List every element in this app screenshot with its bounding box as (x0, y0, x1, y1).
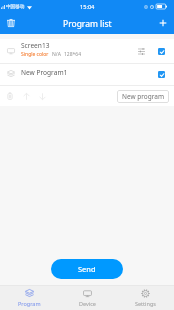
button[interactable]: Select program (158, 71, 165, 78)
staticText: 128*64 (64, 51, 82, 58)
button[interactable]: Program (0, 286, 58, 310)
button[interactable]: Send (51, 259, 123, 279)
button[interactable]: Move up (19, 89, 33, 103)
button[interactable]: Device (58, 286, 116, 310)
button[interactable]: Move down (35, 89, 49, 103)
button[interactable]: Settings (116, 286, 174, 310)
staticText: 15:04 (80, 3, 95, 11)
button[interactable]: Screen13 (0, 39, 174, 63)
staticText: N/A (52, 51, 61, 58)
staticText: Program (18, 300, 41, 307)
staticText: 中国移动 (6, 4, 25, 10)
staticText: Settings (135, 300, 156, 307)
button[interactable]: Program settings (134, 44, 148, 58)
button[interactable]: Add (153, 13, 174, 34)
staticText: New program (122, 92, 165, 101)
button[interactable]: Select program (158, 48, 165, 55)
staticText: Program list (63, 18, 112, 30)
staticText: Single color (21, 51, 49, 58)
button[interactable]: Delete program (3, 89, 17, 103)
staticText: Screen13 (21, 41, 50, 50)
button[interactable]: Delete (0, 13, 21, 34)
staticText: Send (78, 264, 96, 274)
staticText: Device (79, 300, 96, 307)
button[interactable]: New Program1 (0, 64, 174, 85)
button[interactable]: New program (117, 90, 169, 103)
staticText: New Program1 (21, 68, 158, 77)
